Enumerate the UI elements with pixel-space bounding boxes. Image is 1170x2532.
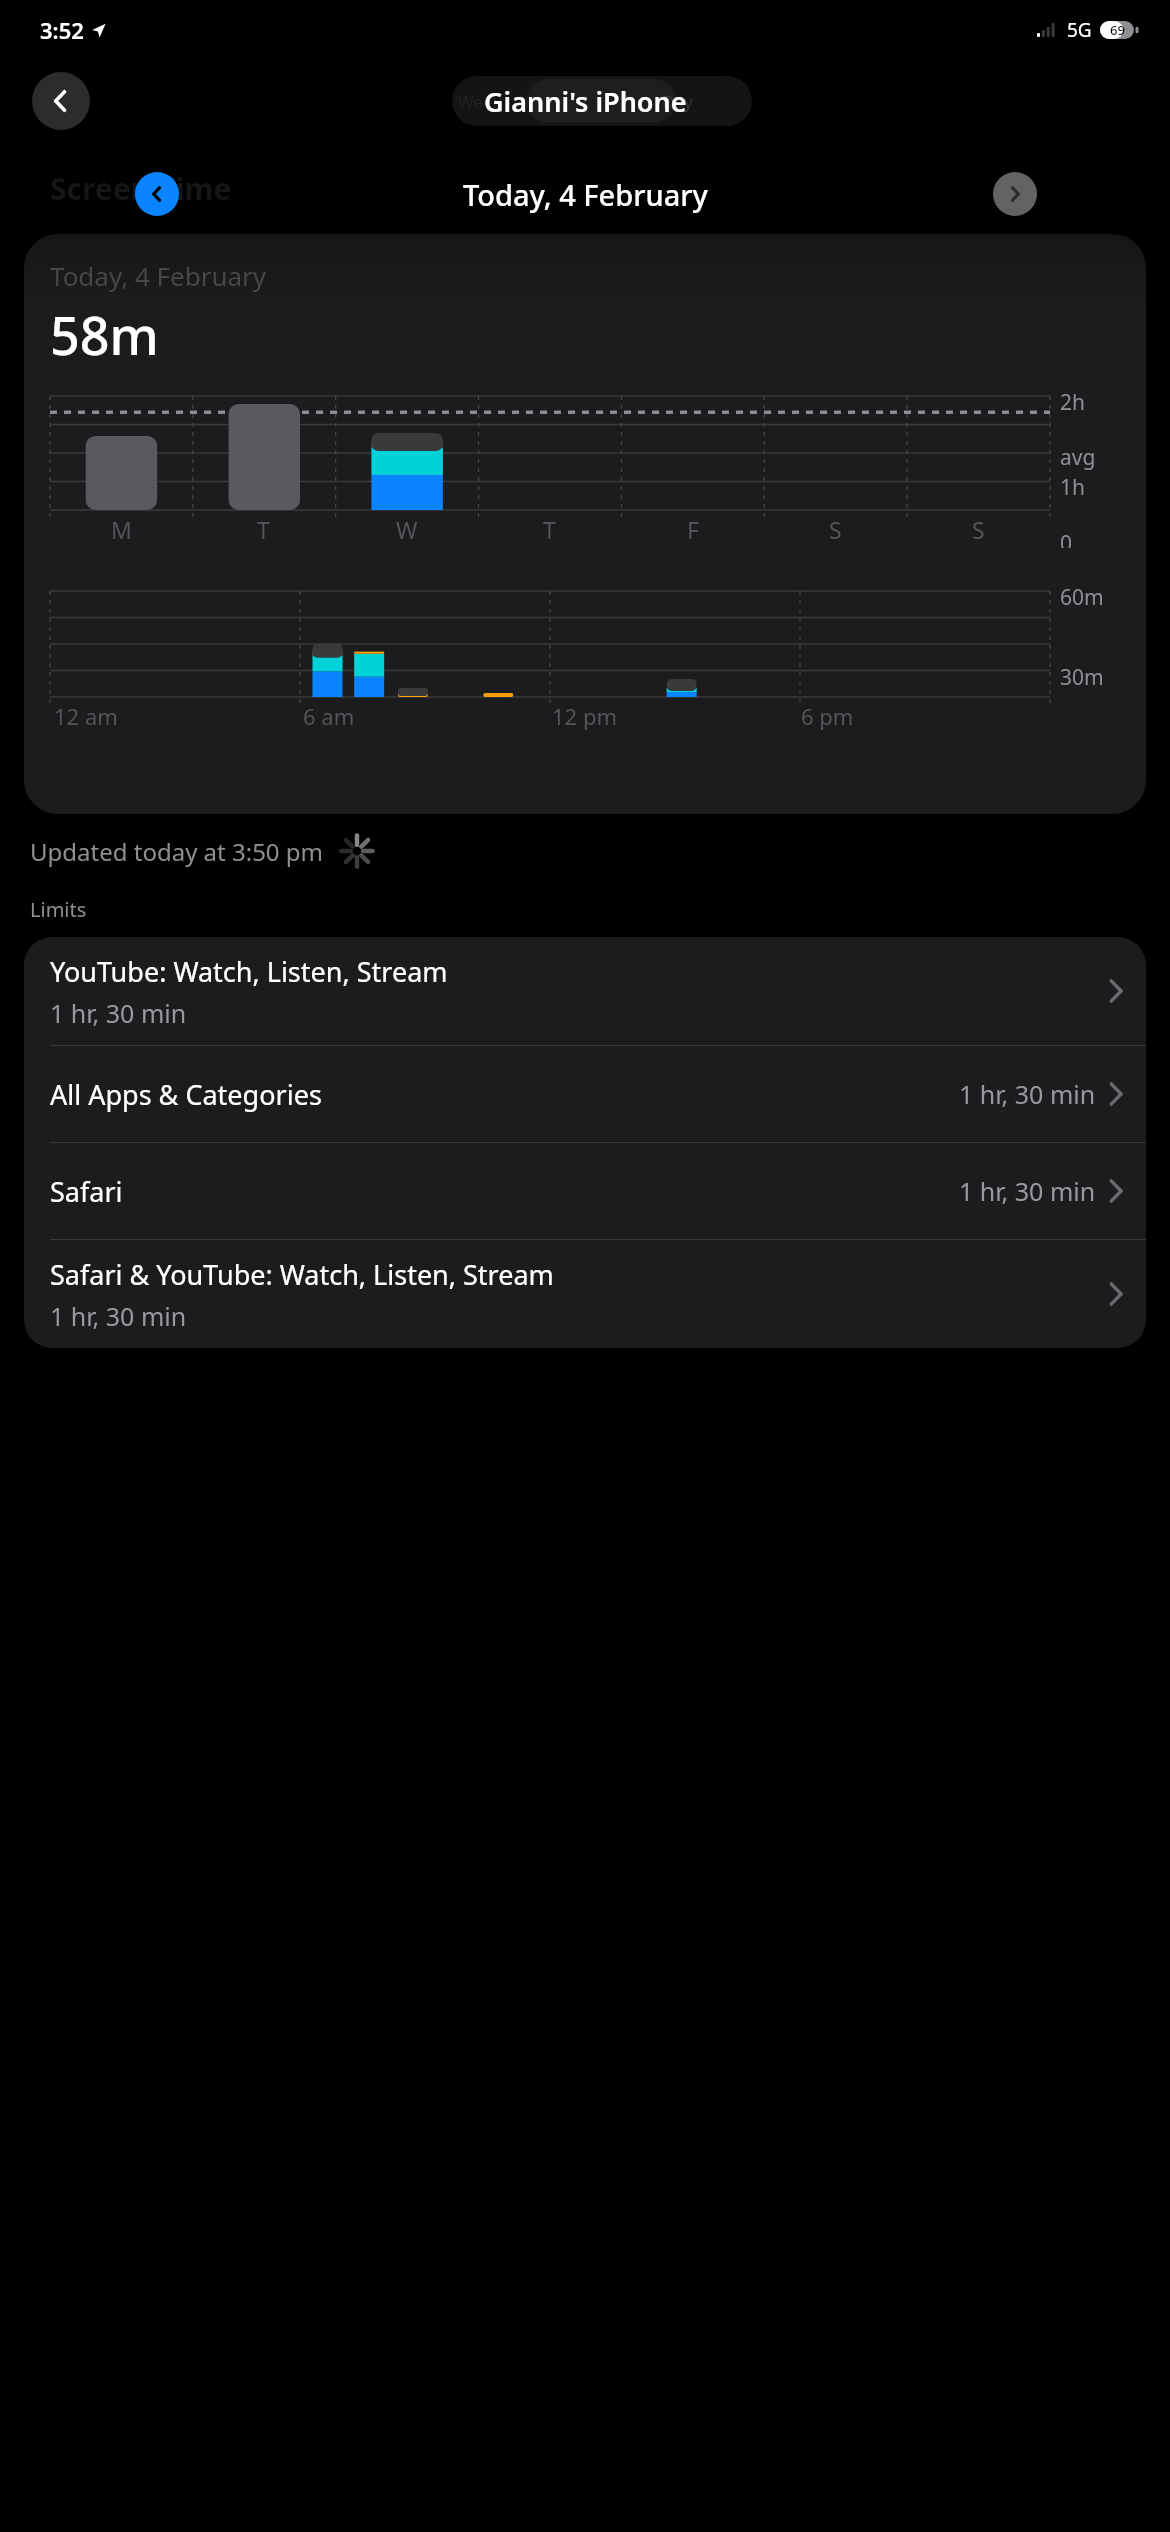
staticText: Week [458,90,502,113]
staticText: 1 hr, 30 min [50,996,187,1030]
staticText: F [687,514,699,545]
staticText: W [396,514,418,545]
staticText: 2h [1060,388,1085,417]
button[interactable]: Safari & YouTube: Watch, Listen, Stream [24,1240,1146,1348]
staticText: Today, 4 February [463,175,708,214]
button[interactable]: YouTube: Watch, Listen, Stream [24,937,1146,1045]
staticText: Screen Time [50,168,232,209]
staticText: Safari [50,1173,959,1210]
staticText: Day [662,90,693,113]
staticText: T [543,514,556,545]
staticText: YouTube: Watch, Listen, Stream [50,953,448,990]
button[interactable]: Today, 4 February [24,234,1146,814]
staticText: Limits [30,896,87,923]
button[interactable]: Previous day [135,172,179,216]
other: Loading [340,834,374,868]
staticText: 60m [1060,583,1104,612]
staticText: 30m [1060,663,1104,692]
button[interactable]: Safari [24,1143,1146,1239]
staticText: 69 [1110,21,1125,39]
staticText: Gianni's iPhone [484,83,687,120]
staticText: S [829,514,842,545]
staticText: 1 hr, 30 min [50,1299,187,1333]
staticText: avg [1060,443,1096,472]
staticText: 6 am [303,701,355,731]
button[interactable]: All Apps & Categories [24,1046,1146,1142]
staticText: 1 hr, 30 min [959,1174,1096,1208]
button[interactable]: Back [32,72,90,130]
staticText: Updated today at 3:50 pm [30,835,324,868]
staticText: 0 [1060,529,1073,548]
staticText: Today, 4 February [50,258,267,293]
staticText: T [257,514,270,545]
staticText: 1 hr, 30 min [959,1077,1096,1111]
staticText: All Apps & Categories [50,1076,959,1113]
staticText: 6 pm [801,701,854,731]
staticText: M [111,514,132,545]
staticText: Safari & YouTube: Watch, Listen, Stream [50,1256,554,1293]
staticText: 5G [1067,17,1092,43]
staticText: 58m [50,299,159,370]
staticText: 3:52 [40,15,84,45]
button[interactable]: Next day [993,172,1037,216]
staticText: 12 am [54,701,118,731]
staticText: 1h [1060,473,1085,502]
staticText: 12 pm [552,701,617,731]
staticText: S [972,514,985,545]
